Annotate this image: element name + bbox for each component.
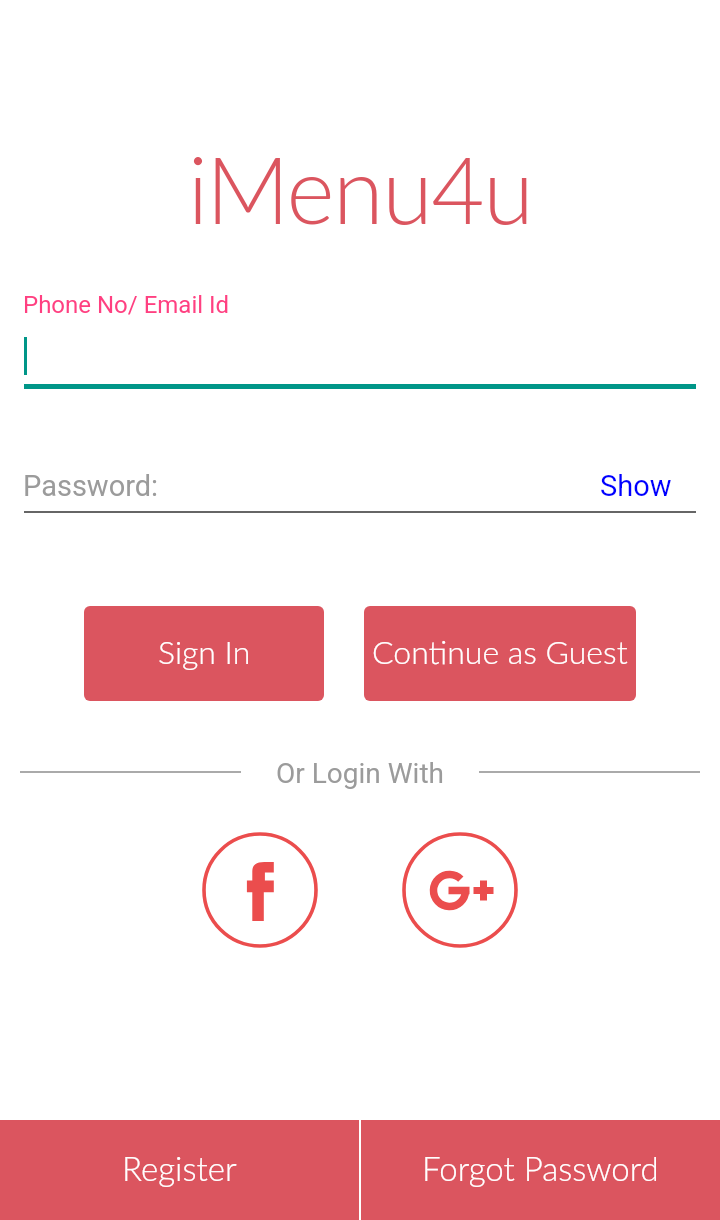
button[interactable]: Sign In [84,606,324,701]
button[interactable]: Forgot Password [361,1120,720,1220]
button[interactable]: Sign in with Facebook [202,832,318,948]
button[interactable]: Sign in with Google Plus [402,832,518,948]
staticText: Register [122,1148,237,1188]
staticText: Password: [23,469,159,503]
button[interactable]: Continue as Guest [364,606,636,701]
button[interactable]: Register [0,1120,359,1220]
staticText: Or Login With [0,757,720,790]
staticText: iMenu4u [0,133,720,243]
button[interactable]: Show [600,469,672,503]
staticText: Forgot Password [422,1148,659,1188]
staticText: Phone No/ Email Id [23,291,230,319]
staticText: Continue as Guest [372,632,628,670]
staticText: Show [600,469,672,503]
staticText: Sign In [158,632,251,670]
